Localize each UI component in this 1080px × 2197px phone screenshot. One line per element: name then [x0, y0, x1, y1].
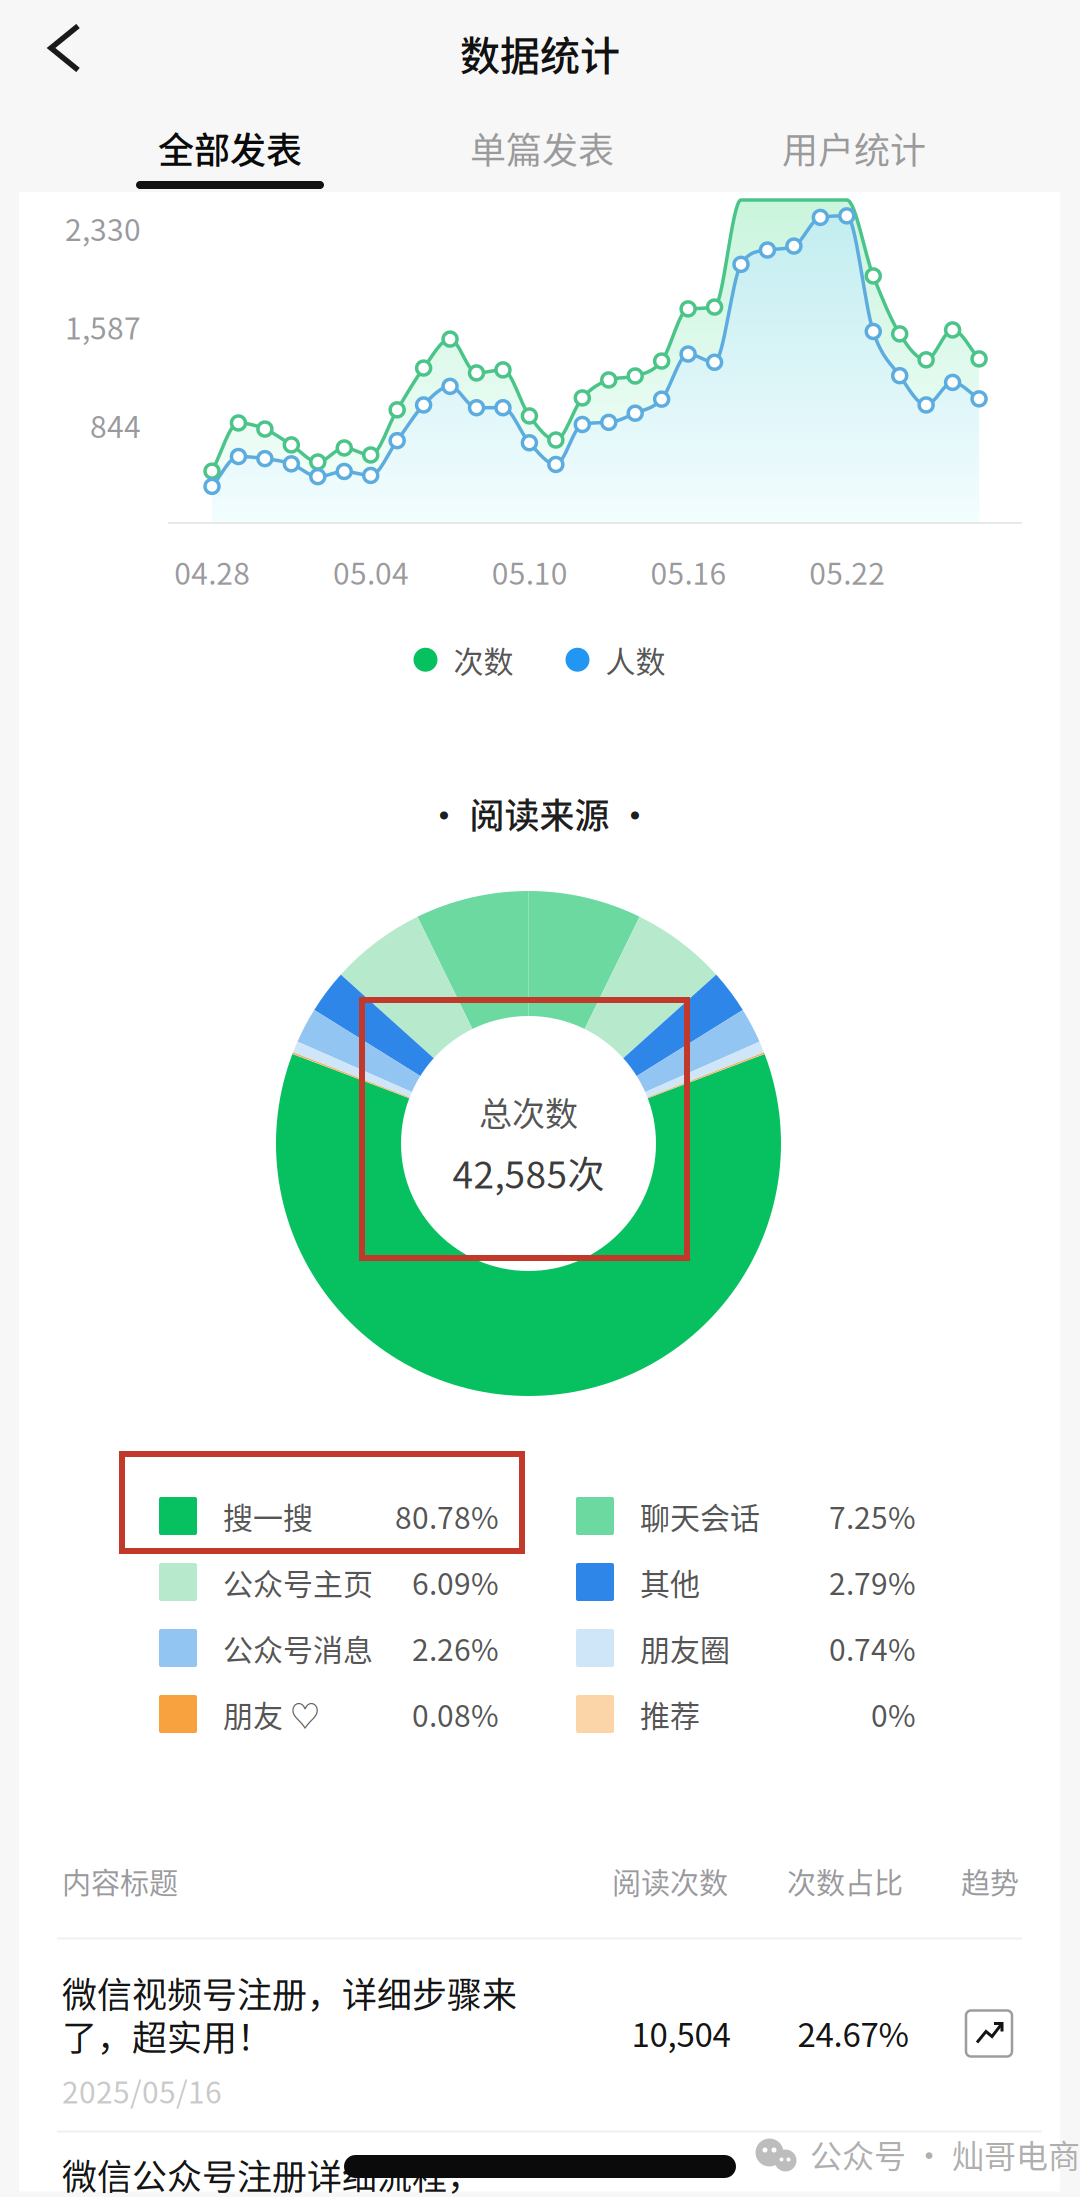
staticText: 朋友 ♡ [223, 1692, 320, 1736]
staticText: 04.28 [174, 550, 250, 593]
staticText: 2025/05/16 [62, 2069, 222, 2112]
staticText: 0.08% [412, 1692, 499, 1736]
staticText: 24.67% [797, 2009, 908, 2056]
staticText: 其他 [640, 1560, 700, 1604]
staticText: 次数占比 [787, 1860, 903, 1903]
button[interactable]: 微信公众号注册详细流程， [19, 1806, 662, 2197]
staticText: 全部发表 [158, 122, 302, 174]
button[interactable]: Back [0, 0, 100, 96]
staticText: 次数 [453, 638, 513, 681]
staticText: 1,587 [65, 305, 141, 348]
staticText: 聊天会话 [640, 1494, 760, 1538]
staticText: 公众号消息 [223, 1626, 373, 1670]
staticText: 单篇发表 [470, 122, 614, 174]
staticText: 7.25% [829, 1494, 916, 1538]
staticText: 42,585次 [452, 1146, 604, 1199]
staticText: 了，超实用！ [62, 2010, 272, 2061]
staticText: 0% [871, 1692, 916, 1736]
button[interactable]: 推荐 [576, 1681, 916, 1747]
staticText: 05.10 [492, 550, 568, 593]
staticText: 05.22 [809, 550, 885, 593]
button[interactable]: 单篇发表 [386, 96, 698, 192]
button[interactable]: 微信视频号注册，详细步骤来 [19, 1956, 1021, 2146]
button[interactable]: 公众号主页 [159, 1549, 499, 1615]
button[interactable]: 朋友圈 [576, 1615, 916, 1681]
staticText: · 阅读来源 · [426, 788, 652, 839]
staticText: 2,330 [65, 206, 141, 250]
staticText: 数据统计 [460, 24, 620, 82]
button[interactable]: 公众号消息 [159, 1615, 499, 1681]
staticText: 内容标题 [62, 1860, 178, 1903]
staticText: 6.09% [412, 1560, 499, 1604]
button[interactable]: 朋友 ♡ [159, 1681, 499, 1747]
staticText: 用户统计 [782, 122, 926, 174]
staticText: 2.79% [829, 1560, 916, 1604]
staticText: 推荐 [640, 1692, 700, 1736]
staticText: 10,504 [631, 2009, 730, 2056]
button[interactable]: 搜一搜 [159, 1483, 499, 1549]
staticText: 朋友圈 [640, 1626, 730, 1670]
staticText: 05.16 [650, 550, 726, 593]
staticText: 微信视频号注册，详细步骤来 [62, 1967, 517, 2018]
staticText: 人数 [605, 638, 665, 681]
staticText: 844 [90, 403, 141, 447]
staticText: 公众号主页 [223, 1560, 373, 1604]
button[interactable]: 全部发表 [74, 96, 386, 192]
button[interactable]: 聊天会话 [576, 1483, 916, 1549]
staticText: 搜一搜 [223, 1494, 313, 1538]
button[interactable]: 用户统计 [698, 96, 1010, 192]
staticText: 趋势 [961, 1860, 1019, 1903]
staticText: 阅读次数 [612, 1860, 728, 1903]
staticText: 2.26% [412, 1626, 499, 1670]
staticText: 微信公众号注册详细流程， [62, 2149, 482, 2197]
staticText: 05.04 [333, 550, 409, 593]
button[interactable]: 其他 [576, 1549, 916, 1615]
staticText: 总次数 [479, 1088, 578, 1136]
staticText: 80.78% [395, 1494, 499, 1538]
staticText: 公众号 · 灿哥电商 [810, 2131, 1080, 2177]
staticText: 0.74% [829, 1626, 916, 1670]
